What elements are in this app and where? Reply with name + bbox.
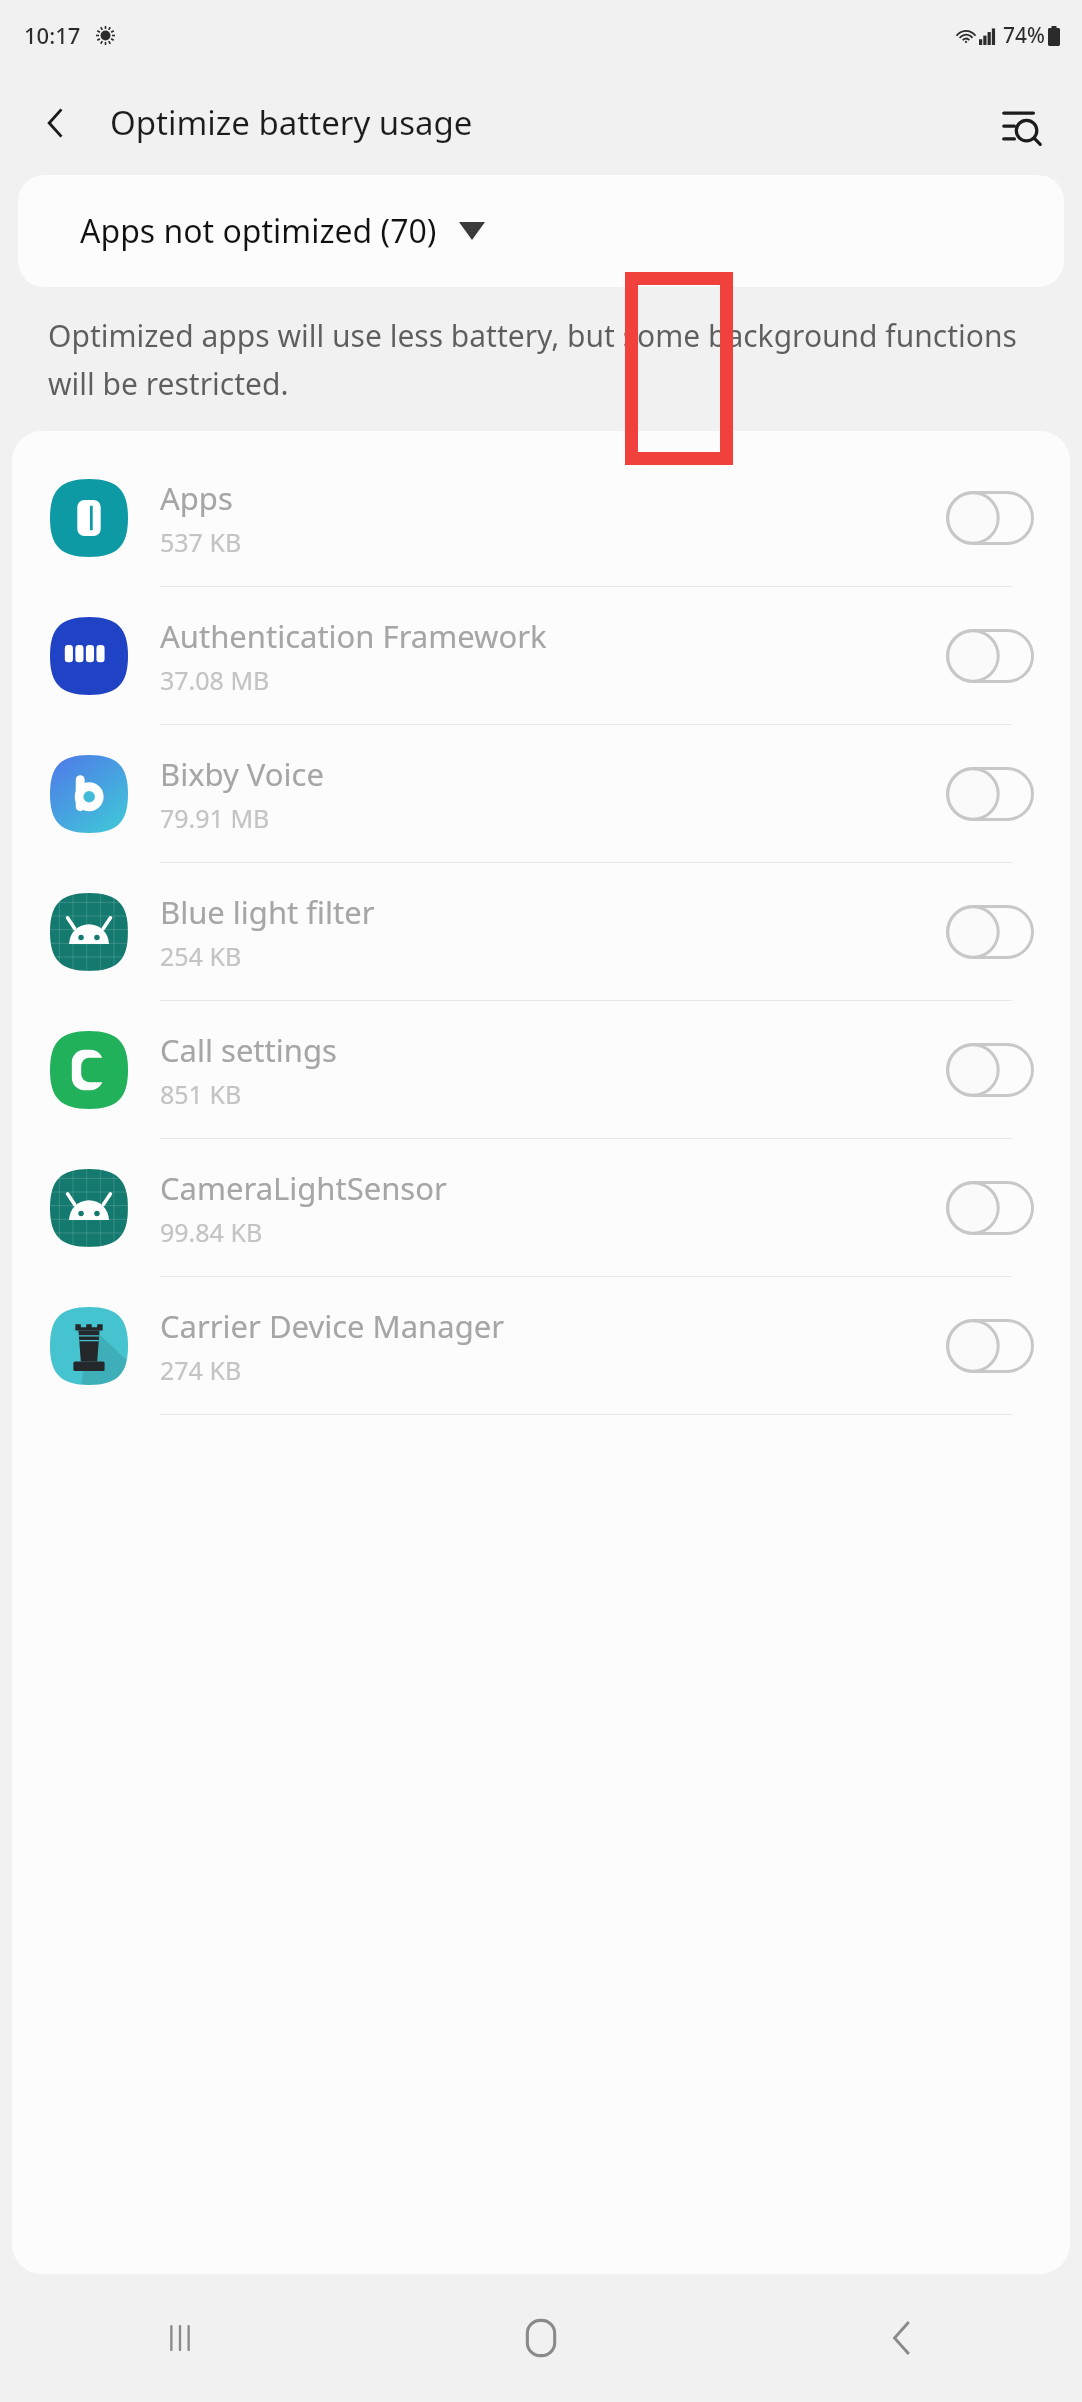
button[interactable]: Home <box>360 2274 721 2402</box>
button[interactable]: CameraLightSensor <box>12 1139 1070 1276</box>
staticText: 10:17 <box>24 20 81 50</box>
button[interactable]: Bixby Voice <box>12 725 1070 862</box>
button[interactable]: Recents <box>0 2274 360 2402</box>
staticText: 99.84 KB <box>160 1215 263 1249</box>
staticText: 37.08 MB <box>160 663 270 697</box>
staticText: 79.91 MB <box>160 801 270 835</box>
button[interactable]: Toggle Bixby Voice <box>946 767 1034 821</box>
button[interactable]: Authentication Framework <box>12 587 1070 724</box>
button[interactable]: Toggle CameraLightSensor <box>946 1181 1034 1235</box>
button[interactable]: Call settings <box>12 1001 1070 1138</box>
staticText: Optimize battery usage <box>110 100 473 145</box>
staticText: 274 KB <box>160 1353 242 1387</box>
button[interactable]: Carrier Device Manager <box>12 1277 1070 1414</box>
button[interactable]: Toggle Apps <box>946 491 1034 545</box>
button[interactable]: Back <box>721 2274 1082 2402</box>
staticText: 537 KB <box>160 525 242 559</box>
staticText: Blue light filter <box>160 891 375 933</box>
staticText: 851 KB <box>160 1077 242 1111</box>
button[interactable]: Search <box>984 85 1060 161</box>
staticText: 74% <box>1003 21 1045 50</box>
button[interactable]: Toggle Carrier Device Manager <box>946 1319 1034 1373</box>
staticText: Carrier Device Manager <box>160 1305 505 1347</box>
button[interactable]: Blue light filter <box>12 863 1070 1000</box>
button[interactable]: Toggle Call settings <box>946 1043 1034 1097</box>
staticText: Apps not optimized (70) <box>80 209 437 253</box>
button[interactable]: Apps <box>12 449 1070 586</box>
staticText: Bixby Voice <box>160 753 324 795</box>
staticText: Apps <box>160 477 233 519</box>
staticText: Call settings <box>160 1029 337 1071</box>
button[interactable]: Toggle Authentication Framework <box>946 629 1034 683</box>
staticText: Authentication Framework <box>160 615 547 657</box>
button[interactable]: Back <box>20 87 92 159</box>
button[interactable]: Apps not optimized (70) <box>18 175 1064 287</box>
button[interactable]: Toggle Blue light filter <box>946 905 1034 959</box>
staticText: CameraLightSensor <box>160 1167 447 1209</box>
staticText: 254 KB <box>160 939 242 973</box>
staticText: Optimized apps will use less battery, bu… <box>48 315 1022 403</box>
